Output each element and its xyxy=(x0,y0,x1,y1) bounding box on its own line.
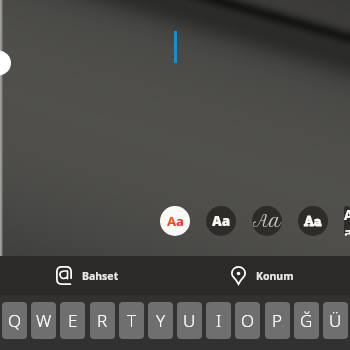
button[interactable]: Q xyxy=(2,302,27,339)
staticText: U xyxy=(183,309,196,332)
staticText: Q xyxy=(8,309,22,332)
staticText: P xyxy=(272,309,283,332)
button[interactable]: Y xyxy=(148,302,173,339)
staticText: Bahset xyxy=(82,269,119,283)
staticText: Aa xyxy=(344,206,350,236)
button[interactable]: I xyxy=(206,302,231,339)
staticText: W xyxy=(36,309,52,332)
staticText: E xyxy=(68,309,78,332)
button[interactable]: R xyxy=(90,302,115,339)
button[interactable]: Aa xyxy=(344,206,350,236)
staticText: Aa xyxy=(253,211,282,231)
button[interactable]: Bahset xyxy=(0,256,175,295)
staticText: O xyxy=(241,309,255,332)
staticText: T xyxy=(127,309,137,332)
staticText: Ğ xyxy=(300,309,313,332)
staticText: R xyxy=(97,309,108,332)
staticText: Aa xyxy=(167,212,184,230)
button[interactable]: E xyxy=(60,302,85,339)
button[interactable]: Konum xyxy=(175,256,350,295)
button[interactable]: Aa xyxy=(206,206,236,236)
other: Konum xyxy=(231,266,246,285)
staticText: Aa xyxy=(212,212,231,230)
button[interactable]: Aa xyxy=(252,206,282,236)
button[interactable]: Ğ xyxy=(294,302,319,339)
button[interactable]: O xyxy=(235,302,260,339)
button[interactable]: W xyxy=(31,302,56,339)
button[interactable]: Aa xyxy=(160,206,190,236)
staticText: Y xyxy=(156,309,166,332)
other: Bahset xyxy=(56,266,72,285)
button[interactable]: P xyxy=(265,302,290,339)
button[interactable]: U xyxy=(177,302,202,339)
staticText: Ü xyxy=(329,309,342,332)
staticText: Konum xyxy=(256,269,294,283)
button[interactable]: Ü xyxy=(323,302,348,339)
button[interactable]: Aa xyxy=(298,206,328,236)
button[interactable]: T xyxy=(119,302,144,339)
staticText: I xyxy=(216,309,222,332)
staticText: Aa xyxy=(304,213,323,229)
